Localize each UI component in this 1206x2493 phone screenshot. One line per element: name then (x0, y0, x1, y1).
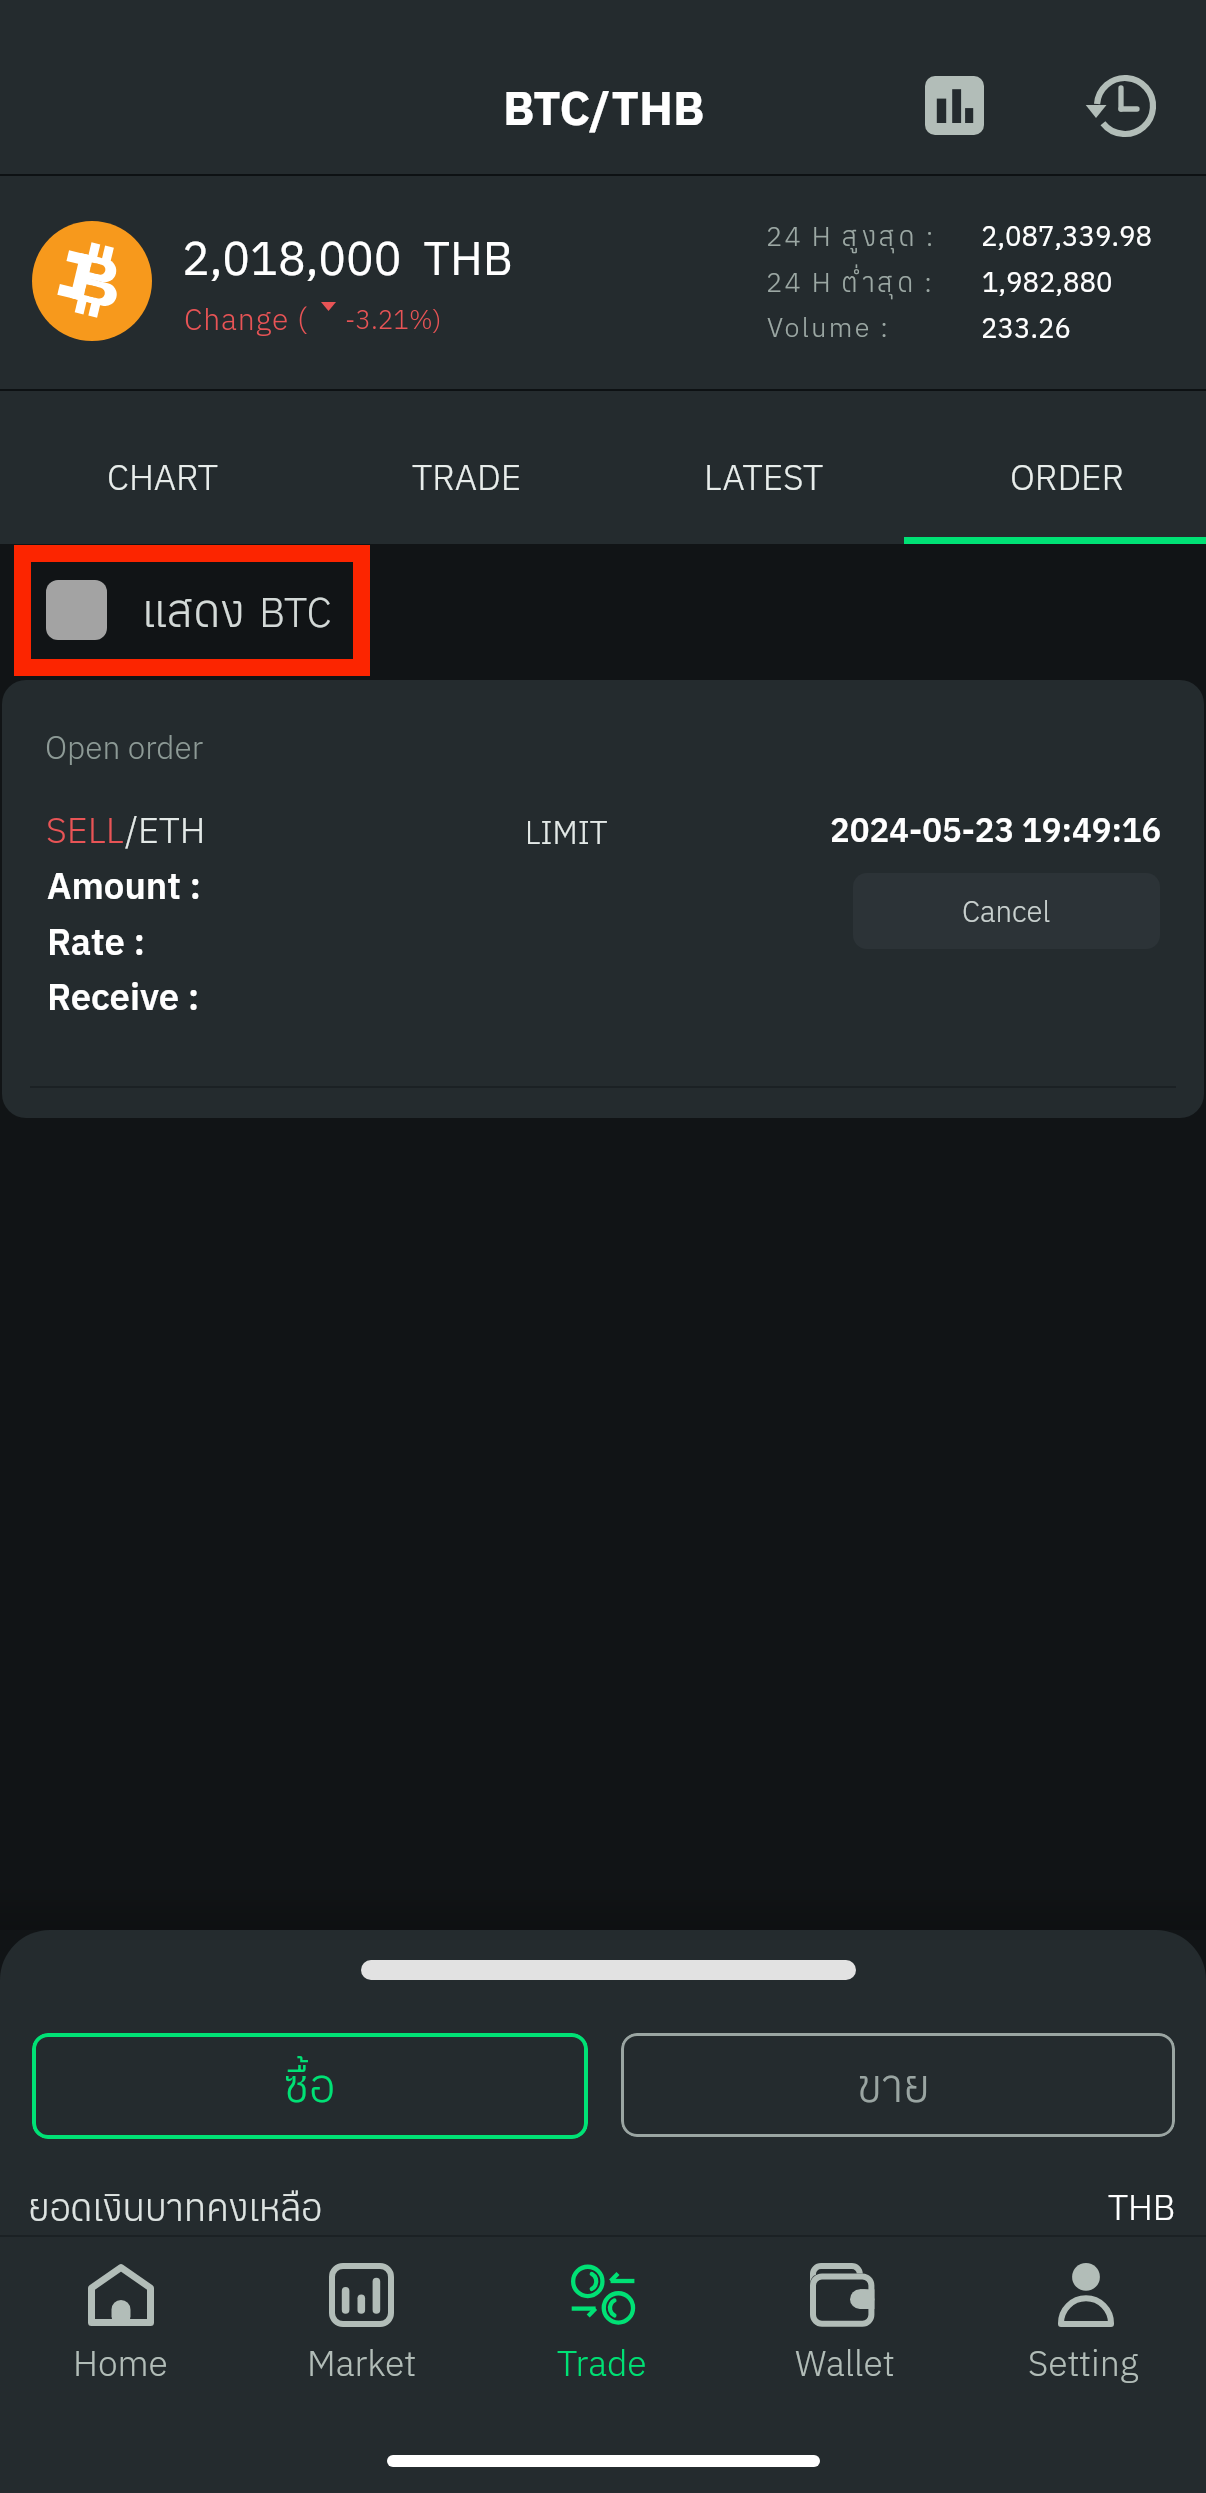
button[interactable]: TRADE (302, 391, 604, 544)
staticText: 24 H ต่ำสุด : (766, 264, 935, 299)
staticText: ขาย (857, 2055, 931, 2115)
staticText: Cancel (962, 892, 1051, 930)
staticText: 24 H สูงสุด : (766, 218, 936, 253)
button[interactable]: LATEST (603, 391, 905, 544)
staticText: CHART (107, 454, 218, 500)
staticText: LIMIT (525, 812, 608, 853)
staticText: ORDER (1010, 454, 1125, 500)
staticText: 2024-05-23 19:49:16 (830, 808, 1162, 851)
staticText: BTC (259, 585, 332, 638)
staticText: Home (73, 2340, 168, 2386)
staticText: SELL/ETH (46, 806, 206, 853)
staticText: ยอดเงินบาทคงเหลือ (28, 2183, 323, 2231)
button[interactable]: Order history (1082, 62, 1170, 150)
button[interactable]: ORDER (905, 391, 1206, 544)
staticText: แสดง (142, 580, 245, 640)
staticText: BTC/THB (503, 77, 705, 138)
staticText: TRADE (412, 454, 522, 500)
staticText: 1,982,880 (982, 264, 1113, 300)
button[interactable]: CHART (0, 391, 302, 544)
button[interactable]: Market (241, 2237, 482, 2417)
staticText: THB (1108, 2184, 1176, 2230)
button[interactable]: Trade (482, 2237, 723, 2417)
button[interactable]: แสดง (30, 562, 355, 659)
staticText: 2,018,000 THB (182, 228, 513, 288)
button[interactable]: Setting (965, 2237, 1206, 2417)
staticText: ซื้อ (284, 2055, 335, 2115)
staticText: -3.21%) (345, 302, 442, 336)
staticText: Receive : (47, 973, 200, 1020)
button[interactable]: Chart (911, 62, 999, 150)
staticText: LATEST (704, 454, 824, 500)
button[interactable]: ซื้อ (32, 2033, 588, 2139)
staticText: 233.26 (981, 310, 1071, 346)
staticText: 2,087,339.98 (981, 218, 1152, 254)
staticText: Volume : (767, 309, 891, 344)
staticText: Amount : (47, 862, 201, 909)
button[interactable]: ขาย (621, 2033, 1175, 2137)
staticText: Setting (1028, 2340, 1139, 2386)
staticText: Wallet (795, 2340, 895, 2386)
staticText: Trade (557, 2340, 647, 2386)
staticText: Change ( (184, 299, 308, 338)
button[interactable]: Cancel (853, 873, 1160, 949)
button[interactable]: Wallet (724, 2237, 965, 2417)
button[interactable]: Home (0, 2237, 241, 2417)
staticText: Market (307, 2340, 417, 2386)
staticText: Rate : (47, 918, 146, 965)
staticText: Open order (45, 727, 204, 768)
